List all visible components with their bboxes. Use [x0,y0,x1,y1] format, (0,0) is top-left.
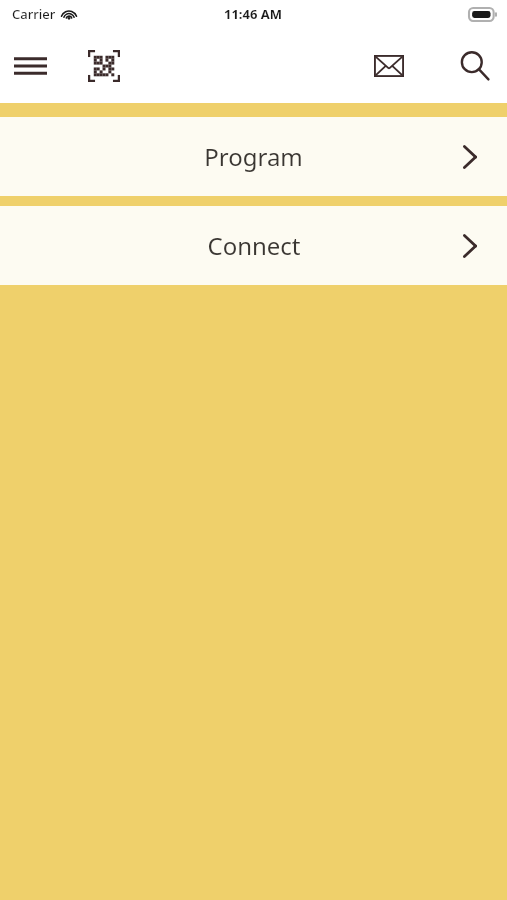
button[interactable]: Connect [0,206,507,285]
button[interactable]: Menu [6,42,54,90]
button[interactable]: Search [451,42,499,90]
button[interactable]: Program [0,117,507,196]
button[interactable]: Messages [365,42,413,90]
button[interactable]: Scan QR code [80,42,128,90]
staticText: Connect [207,229,301,262]
staticText: Carrier [12,5,56,23]
staticText: 11:46 AM [224,5,283,23]
staticText: Program [204,140,303,173]
